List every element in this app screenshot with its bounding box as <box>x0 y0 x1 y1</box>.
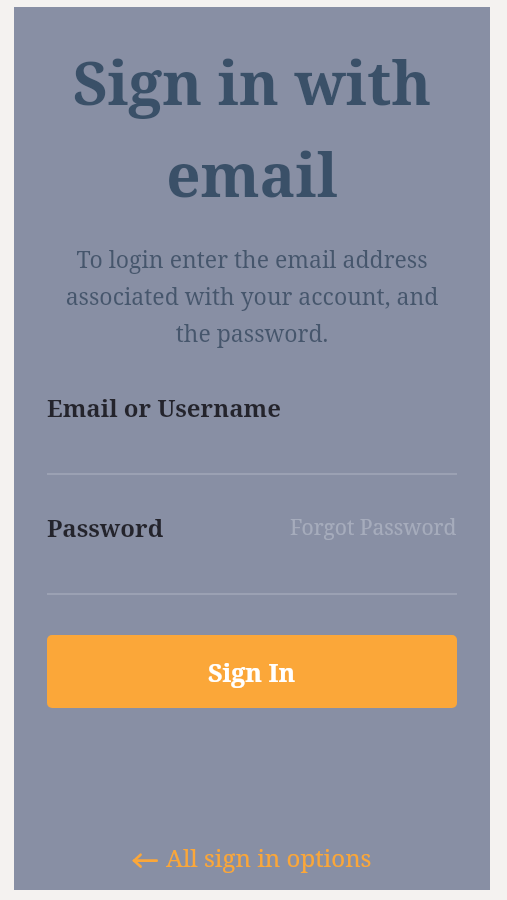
button[interactable]: Forgot Password <box>290 513 457 542</box>
button[interactable]: Password <box>47 511 164 544</box>
staticText: All sign in options <box>166 841 372 874</box>
staticText: Sign in with email <box>40 41 464 215</box>
button[interactable]: Sign In <box>47 635 457 708</box>
staticText: To login enter the email address associa… <box>46 243 458 349</box>
button[interactable]: Back <box>14 841 490 874</box>
staticText: Email or Username <box>47 391 281 424</box>
staticText: Sign In <box>208 655 296 689</box>
button[interactable]: Email or Username <box>47 391 457 475</box>
staticText: Forgot Password <box>290 513 457 542</box>
other: Back <box>132 847 158 869</box>
staticText: Password <box>47 511 164 544</box>
